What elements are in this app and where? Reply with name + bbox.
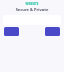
button[interactable] [45, 27, 60, 36]
staticText: WEBSITE [0, 2, 64, 6]
staticText: Secure & Private [0, 7, 64, 12]
button[interactable] [4, 27, 19, 36]
